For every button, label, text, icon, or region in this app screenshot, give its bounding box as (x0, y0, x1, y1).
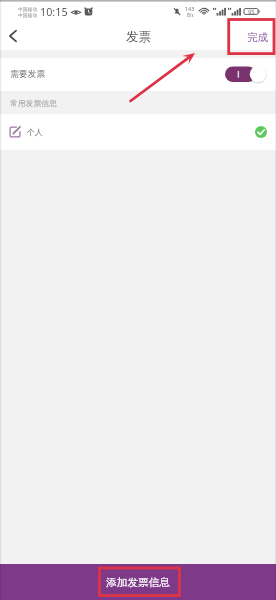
button[interactable]: 完成 (233, 22, 276, 50)
staticText: 个人 (27, 127, 43, 137)
staticText: 95 (248, 8, 255, 16)
staticText: B/s (187, 12, 194, 18)
staticText: 需要发票 (10, 69, 46, 80)
staticText: 发票 (126, 29, 151, 45)
staticText: 常用发票信息 (10, 98, 57, 108)
staticText: 中国移动 (18, 6, 38, 12)
button[interactable]: 添加发票信息 (0, 564, 276, 600)
staticText: 中国移动 (18, 12, 38, 18)
button[interactable]: Back (0, 22, 28, 50)
staticText: 10:15 (40, 4, 68, 19)
staticText: 完成 (247, 31, 268, 44)
button[interactable]: 个人 (0, 114, 276, 150)
staticText: 添加发票信息 (106, 576, 170, 589)
staticText: 143 (185, 5, 195, 12)
button[interactable]: 需要发票 (0, 58, 276, 91)
